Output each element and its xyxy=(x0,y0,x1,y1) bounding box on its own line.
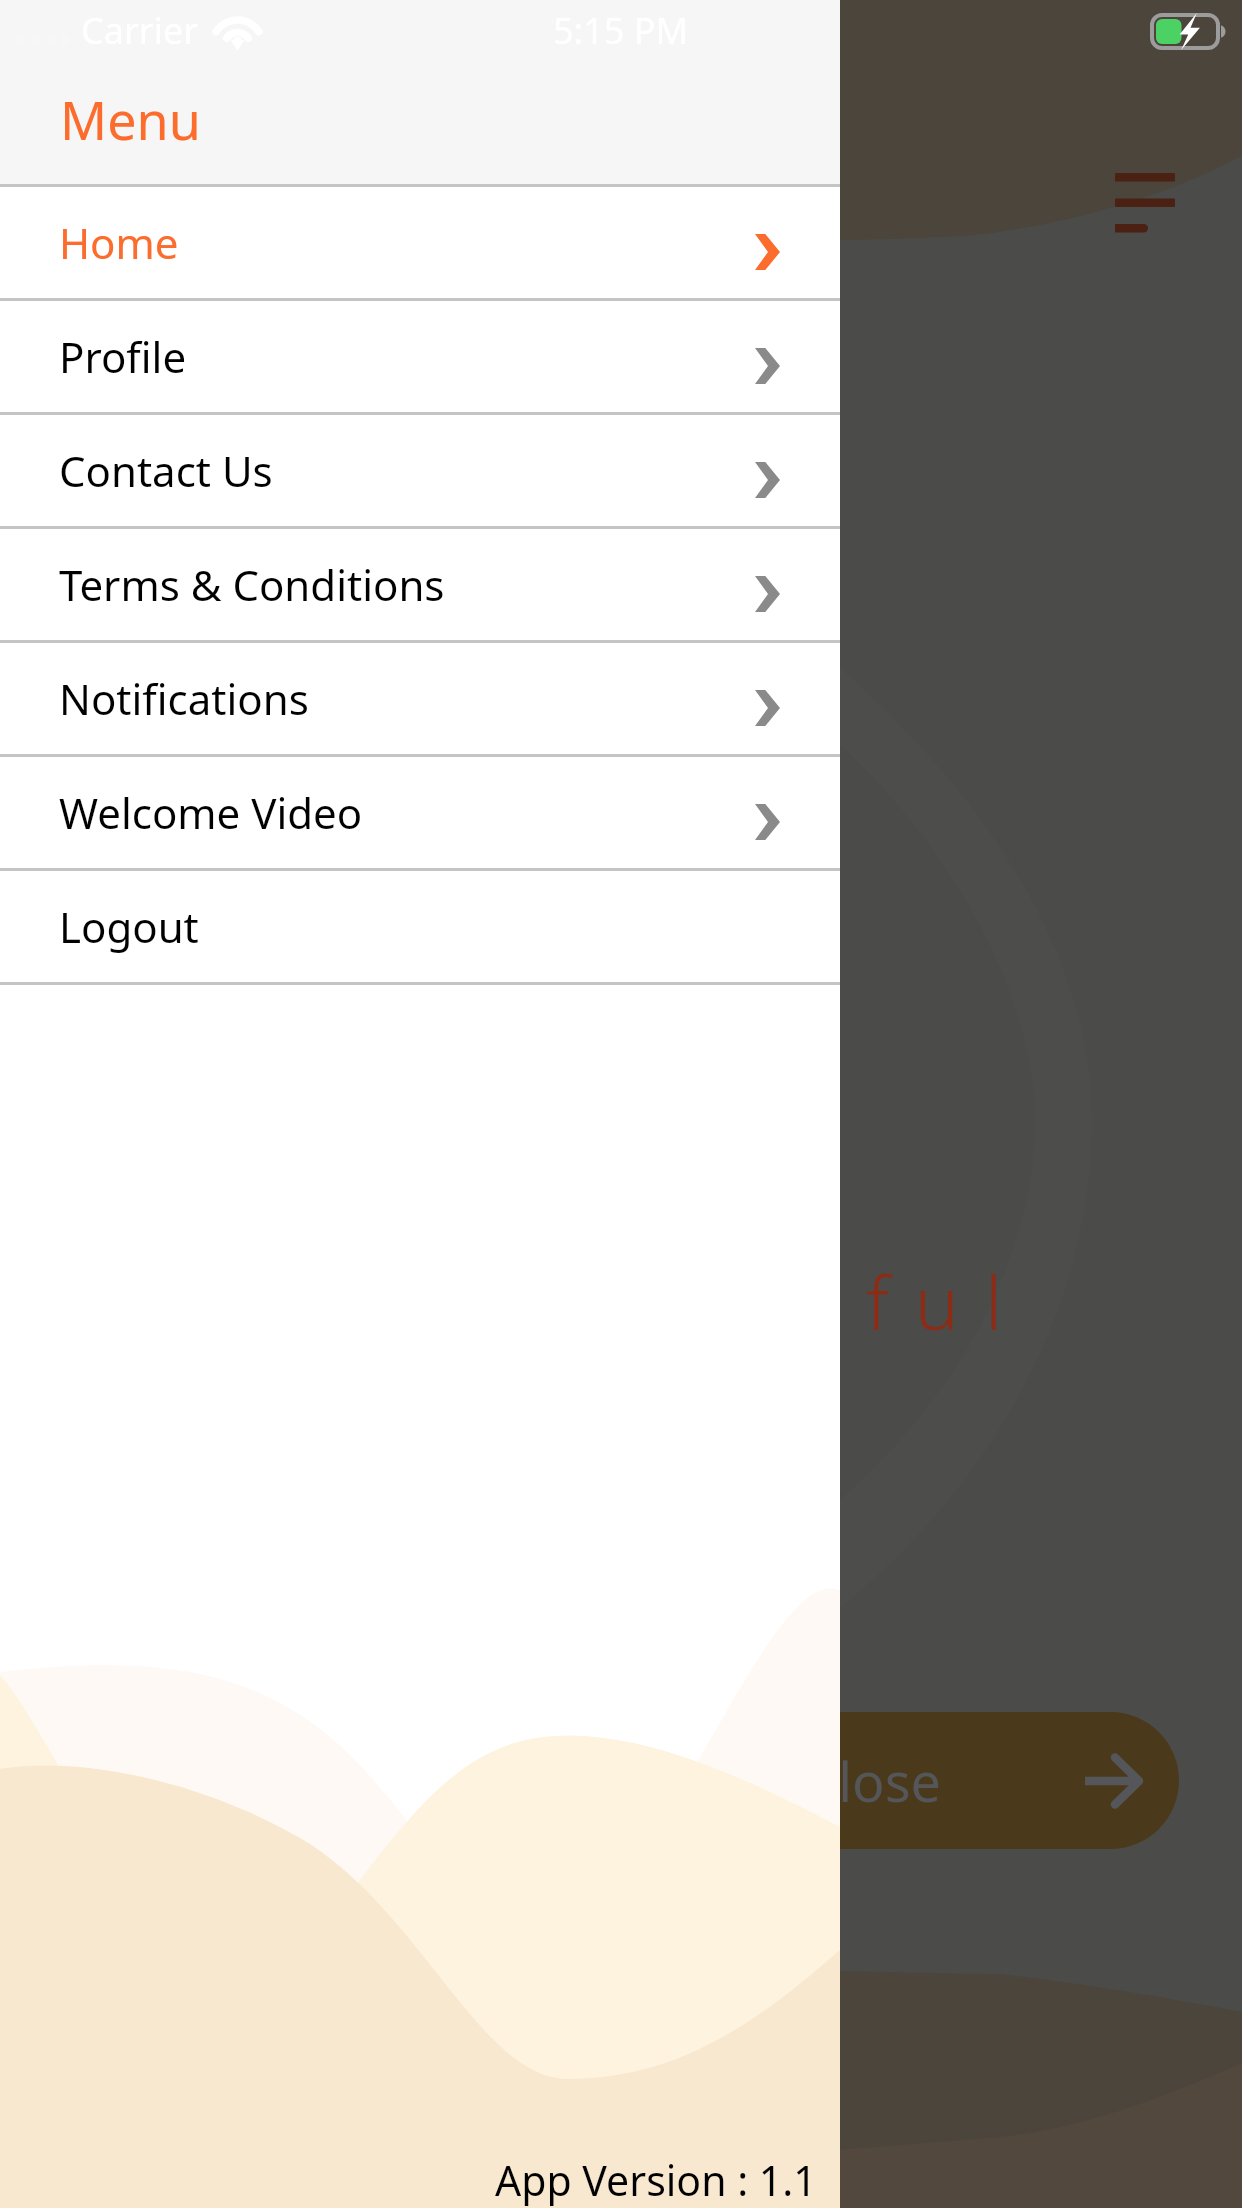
staticText: Profile xyxy=(59,328,187,385)
staticText: ful xyxy=(866,1251,1029,1352)
staticText: Close xyxy=(804,1744,942,1818)
button[interactable]: Open menu xyxy=(1105,165,1185,241)
button[interactable]: Contact Us xyxy=(0,415,840,526)
staticText: Menu xyxy=(60,84,201,155)
staticText: Carrier xyxy=(81,6,199,55)
button[interactable]: Notifications xyxy=(0,643,840,754)
staticText: Contact Us xyxy=(59,442,273,499)
button[interactable]: Home xyxy=(0,187,840,298)
staticText: Welcome Video xyxy=(59,784,363,841)
button[interactable]: Logout xyxy=(0,871,840,982)
staticText: 5:15 PM xyxy=(553,6,689,55)
staticText: Home xyxy=(59,214,179,271)
button[interactable]: Terms & Conditions xyxy=(0,529,840,640)
staticText: Notifications xyxy=(59,670,309,727)
staticText: App Version : 1.1 xyxy=(495,2152,817,2208)
button[interactable]: Close xyxy=(660,1712,1179,1849)
staticText: Terms & Conditions xyxy=(59,556,445,613)
button[interactable]: Welcome Video xyxy=(0,757,840,868)
staticText: Logout xyxy=(59,898,199,955)
button[interactable]: Profile xyxy=(0,301,840,412)
